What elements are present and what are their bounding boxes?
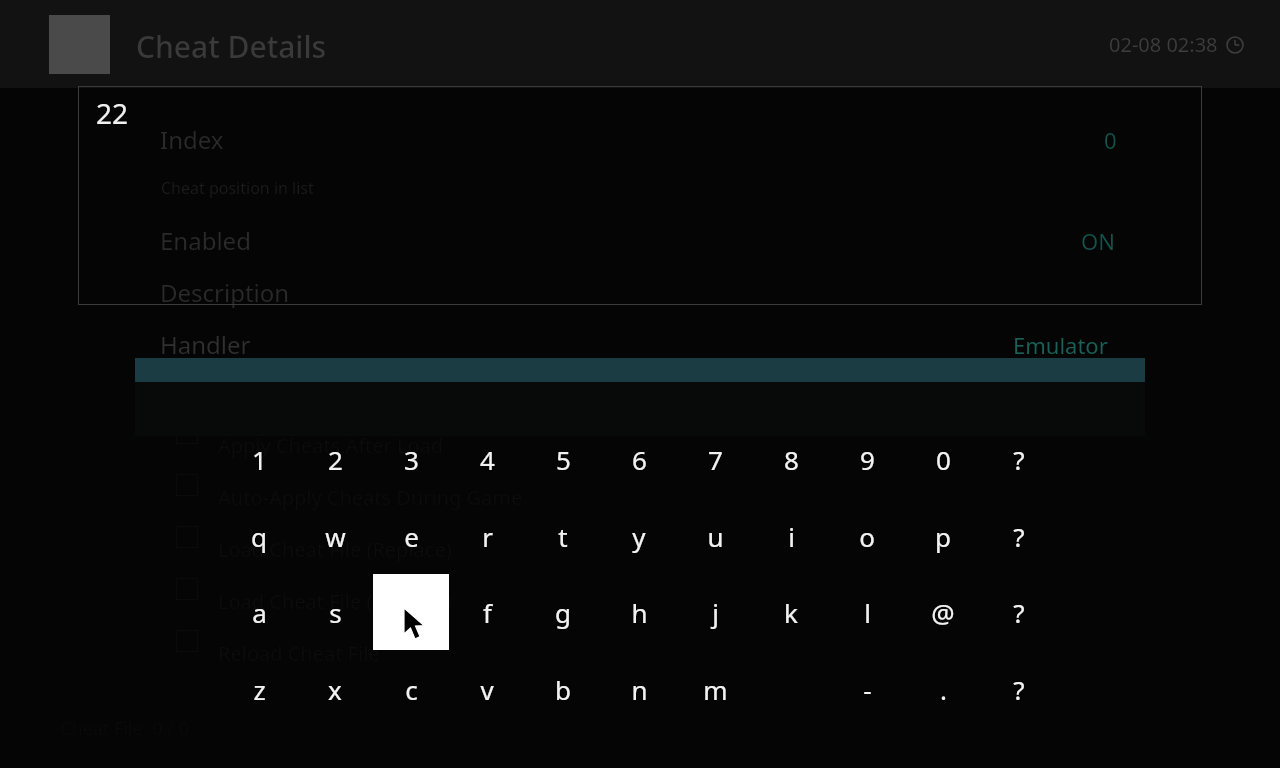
staticText: 0 — [936, 442, 951, 477]
staticText: i — [788, 519, 795, 554]
staticText: q — [251, 519, 267, 554]
staticText: ON — [1081, 226, 1115, 256]
button[interactable]: v — [449, 651, 525, 727]
button[interactable]: i — [753, 498, 829, 574]
staticText: j — [712, 595, 719, 630]
staticText: e — [404, 519, 419, 554]
staticText: ? — [1013, 442, 1025, 477]
staticText: 4 — [480, 442, 495, 477]
staticText: @ — [931, 595, 955, 630]
button[interactable]: . — [905, 651, 981, 727]
staticText: 9 — [860, 442, 875, 477]
staticText: 7 — [708, 442, 723, 477]
staticText: o — [859, 519, 875, 554]
button[interactable]: q — [221, 498, 297, 574]
button[interactable]: 3 — [373, 421, 449, 497]
button[interactable]: r — [449, 498, 525, 574]
button[interactable]: j — [677, 574, 753, 650]
staticText: 0 — [1104, 125, 1117, 155]
button[interactable]: 2 — [297, 421, 373, 497]
staticText: Apply Cheats After Load — [218, 432, 444, 459]
button[interactable]: l — [829, 574, 905, 650]
staticText: - — [863, 672, 872, 707]
staticText: Cheat Details — [136, 26, 327, 67]
staticText: a — [252, 595, 267, 630]
staticText: s — [329, 595, 342, 630]
staticText: ? — [1013, 672, 1025, 707]
staticText: u — [707, 519, 724, 554]
staticText: . — [940, 672, 947, 707]
staticText: n — [631, 672, 648, 707]
button[interactable]: ? — [981, 651, 1057, 727]
staticText: z — [253, 672, 266, 707]
staticText: v — [480, 672, 494, 707]
button[interactable]: n — [601, 651, 677, 727]
staticText: 3 — [404, 442, 419, 477]
button[interactable]: k — [753, 574, 829, 650]
button[interactable]: 9 — [829, 421, 905, 497]
button[interactable]: ? — [981, 498, 1057, 574]
staticText: Enabled — [160, 224, 251, 257]
staticText: 02-08 02:38 — [1109, 31, 1218, 58]
button[interactable]: m — [677, 651, 753, 727]
button[interactable]: w — [297, 498, 373, 574]
button[interactable]: ? — [981, 421, 1057, 497]
staticText: b — [555, 672, 571, 707]
button[interactable]: c — [373, 651, 449, 727]
button[interactable]: 1 — [221, 421, 297, 497]
button[interactable] — [373, 574, 449, 650]
button[interactable]: b — [525, 651, 601, 727]
staticText: g — [555, 595, 571, 630]
staticText: r — [482, 519, 493, 554]
staticText: l — [864, 595, 871, 630]
button[interactable]: o — [829, 498, 905, 574]
staticText: Handler — [160, 328, 251, 361]
button[interactable]: z — [221, 651, 297, 727]
button[interactable]: y — [601, 498, 677, 574]
staticText: y — [632, 519, 646, 554]
button[interactable]: ? — [981, 574, 1057, 650]
staticText: 2 — [328, 442, 343, 477]
button[interactable]: s — [297, 574, 373, 650]
staticText: ? — [1013, 595, 1025, 630]
staticText: 1 — [252, 442, 267, 477]
staticText: Load Cheat File (Replace) — [218, 536, 452, 563]
button[interactable]: f — [449, 574, 525, 650]
button[interactable]: - — [829, 651, 905, 727]
button[interactable]: 7 — [677, 421, 753, 497]
button[interactable]: 4 — [449, 421, 525, 497]
staticText: Emulator — [1013, 330, 1108, 360]
button[interactable]: 5 — [525, 421, 601, 497]
button[interactable]: a — [221, 574, 297, 650]
button[interactable]: 8 — [753, 421, 829, 497]
staticText: Cheat position in list — [161, 177, 314, 199]
button[interactable]: e — [373, 498, 449, 574]
staticText: k — [784, 595, 798, 630]
button[interactable]: p — [905, 498, 981, 574]
staticText: m — [703, 672, 728, 707]
staticText: 5 — [556, 442, 571, 477]
staticText: Load Cheat File (Append) — [218, 588, 452, 615]
staticText: Index — [160, 123, 224, 156]
button[interactable]: 6 — [601, 421, 677, 497]
button[interactable]: 0 — [905, 421, 981, 497]
button[interactable]: @ — [905, 574, 981, 650]
staticText: t — [558, 519, 568, 554]
staticText: Description — [160, 276, 290, 309]
button[interactable]: h — [601, 574, 677, 650]
staticText: 22 — [96, 94, 129, 132]
staticText: 6 — [632, 442, 647, 477]
button[interactable]: t — [525, 498, 601, 574]
staticText: 8 — [784, 442, 799, 477]
button[interactable]: u — [677, 498, 753, 574]
staticText: ? — [1013, 519, 1025, 554]
button[interactable]: g — [525, 574, 601, 650]
button[interactable]: x — [297, 651, 373, 727]
staticText: f — [483, 595, 492, 630]
staticText: w — [325, 519, 346, 554]
